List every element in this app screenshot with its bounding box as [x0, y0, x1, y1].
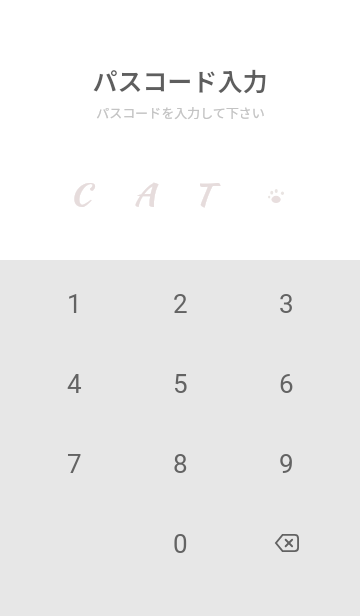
staticText: 8: [173, 449, 188, 479]
staticText: パスコード入力: [92, 62, 268, 98]
staticText: 3: [279, 289, 294, 319]
staticText: 2: [173, 289, 188, 319]
button[interactable]: 7: [21, 424, 127, 504]
staticText: 7: [67, 449, 82, 479]
staticText: T: [193, 173, 213, 215]
button[interactable]: 0: [127, 504, 233, 584]
button[interactable]: Backspace: [233, 504, 339, 584]
button[interactable]: 5: [127, 344, 233, 424]
button[interactable]: 2: [127, 264, 233, 344]
button[interactable]: 8: [127, 424, 233, 504]
staticText: A: [133, 173, 157, 215]
button[interactable]: 6: [233, 344, 339, 424]
button[interactable]: 3: [233, 264, 339, 344]
staticText: 4: [67, 369, 82, 399]
button[interactable]: 9: [233, 424, 339, 504]
staticText: 0: [173, 529, 188, 559]
button[interactable]: 1: [21, 264, 127, 344]
staticText: 9: [279, 449, 294, 479]
staticText: C: [69, 173, 91, 215]
staticText: パスコードを入力して下さい: [96, 103, 265, 122]
staticText: 5: [173, 369, 188, 399]
staticText: 6: [279, 369, 294, 399]
staticText: 1: [67, 289, 82, 319]
button[interactable]: 4: [21, 344, 127, 424]
